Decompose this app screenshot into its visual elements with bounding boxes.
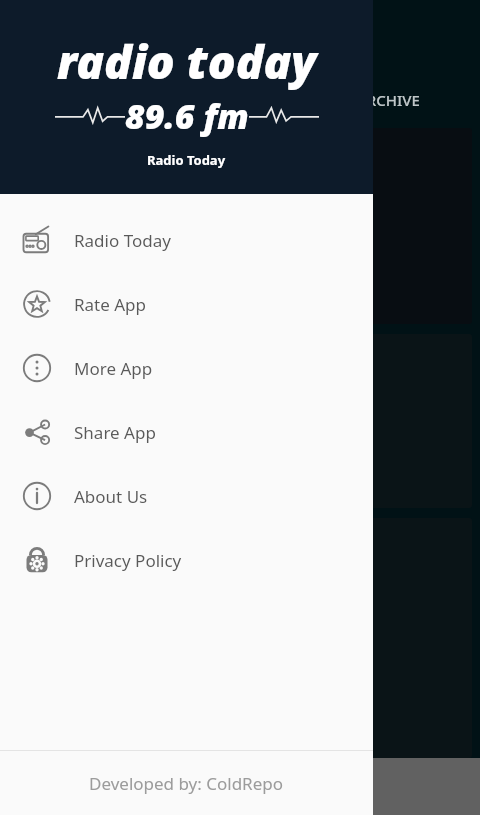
button[interactable]: More App	[0, 336, 373, 400]
staticText: radio today	[122, 194, 359, 251]
staticText: Share App	[74, 421, 156, 444]
staticText: More App	[74, 357, 153, 380]
button[interactable]: Rate App	[0, 272, 373, 336]
staticText: ARCHIVE	[357, 90, 420, 110]
staticText: Rate App	[74, 293, 147, 316]
button[interactable]: Privacy Policy	[0, 528, 373, 592]
staticText: 89.6 fm	[125, 93, 249, 139]
button[interactable]: About Us	[0, 464, 373, 528]
staticText: Radio Today	[147, 151, 226, 169]
staticText: About Us	[74, 485, 148, 508]
staticText: Privacy Policy	[74, 549, 182, 572]
button[interactable]: Radio Today	[0, 208, 373, 272]
button[interactable]: Share App	[0, 400, 373, 464]
staticText: Radio Today	[74, 229, 171, 252]
staticText: radio today	[57, 30, 317, 93]
staticText: Developed by: ColdRepo	[89, 772, 284, 795]
